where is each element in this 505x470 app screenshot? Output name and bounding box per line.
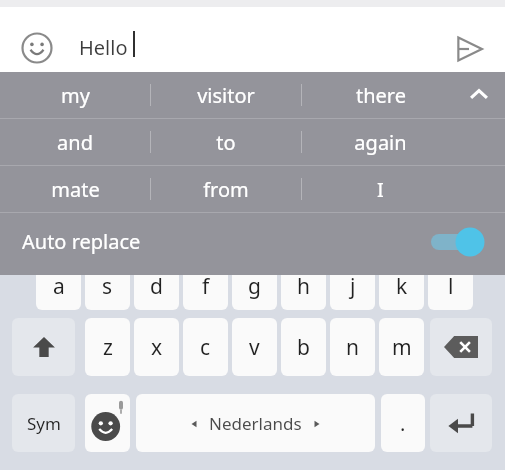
- staticText: visitor: [197, 82, 255, 109]
- button[interactable]: k: [379, 262, 424, 310]
- staticText: from: [203, 176, 249, 203]
- button[interactable]: my: [0, 72, 150, 118]
- button[interactable]: Backspace: [430, 318, 492, 376]
- button[interactable]: Collapse suggestions: [461, 77, 497, 113]
- button[interactable]: Emoji and voice input: [85, 394, 130, 452]
- staticText: h: [297, 272, 310, 301]
- staticText: Auto replace: [22, 228, 141, 255]
- button[interactable]: m: [379, 318, 424, 376]
- button[interactable]: b: [281, 318, 326, 376]
- button[interactable]: again: [302, 119, 459, 165]
- staticText: f: [202, 272, 210, 301]
- staticText: to: [216, 129, 236, 156]
- staticText: v: [249, 333, 260, 362]
- staticText: k: [396, 272, 408, 301]
- button[interactable]: f: [183, 262, 228, 310]
- staticText: s: [102, 272, 113, 301]
- button[interactable]: visitor: [151, 72, 301, 118]
- button[interactable]: Auto replace: [0, 213, 505, 270]
- button[interactable]: Sym: [12, 394, 75, 452]
- button[interactable]: mate: [0, 166, 150, 212]
- button[interactable]: Nederlands: [136, 394, 375, 452]
- button[interactable]: Send: [450, 30, 488, 68]
- button[interactable]: z: [85, 318, 130, 376]
- button[interactable]: I: [302, 166, 459, 212]
- staticText: Hello: [79, 34, 128, 61]
- staticText: Sym: [27, 412, 61, 435]
- staticText: again: [354, 129, 407, 156]
- button[interactable]: a: [36, 262, 81, 310]
- staticText: c: [200, 333, 211, 362]
- button[interactable]: x: [134, 318, 179, 376]
- button[interactable]: l: [428, 262, 473, 310]
- staticText: b: [297, 333, 310, 362]
- button[interactable]: c: [183, 318, 228, 376]
- button[interactable]: d: [134, 262, 179, 310]
- staticText: n: [346, 333, 359, 362]
- button[interactable]: h: [281, 262, 326, 310]
- button[interactable]: to: [151, 119, 301, 165]
- button[interactable]: g: [232, 262, 277, 310]
- staticText: z: [103, 333, 113, 362]
- button[interactable]: Shift: [12, 318, 75, 376]
- button[interactable]: j: [330, 262, 375, 310]
- staticText: g: [248, 272, 261, 301]
- staticText: mate: [51, 176, 100, 203]
- staticText: Nederlands: [209, 412, 302, 435]
- staticText: m: [392, 333, 412, 362]
- staticText: and: [57, 129, 93, 156]
- button[interactable]: .: [381, 394, 425, 452]
- button[interactable]: and: [0, 119, 150, 165]
- staticText: there: [356, 82, 406, 109]
- staticText: .: [400, 410, 406, 437]
- button[interactable]: there: [302, 72, 459, 118]
- staticText: my: [61, 82, 90, 109]
- staticText: l: [448, 272, 454, 301]
- staticText: I: [377, 176, 384, 203]
- staticText: a: [53, 272, 65, 301]
- button[interactable]: n: [330, 318, 375, 376]
- button[interactable]: v: [232, 318, 277, 376]
- staticText: d: [150, 272, 163, 301]
- button[interactable]: Enter: [430, 394, 492, 452]
- button[interactable]: from: [151, 166, 301, 212]
- staticText: x: [151, 333, 163, 362]
- staticText: j: [350, 272, 356, 301]
- button[interactable]: Emoji: [21, 32, 53, 64]
- button[interactable]: s: [85, 262, 130, 310]
